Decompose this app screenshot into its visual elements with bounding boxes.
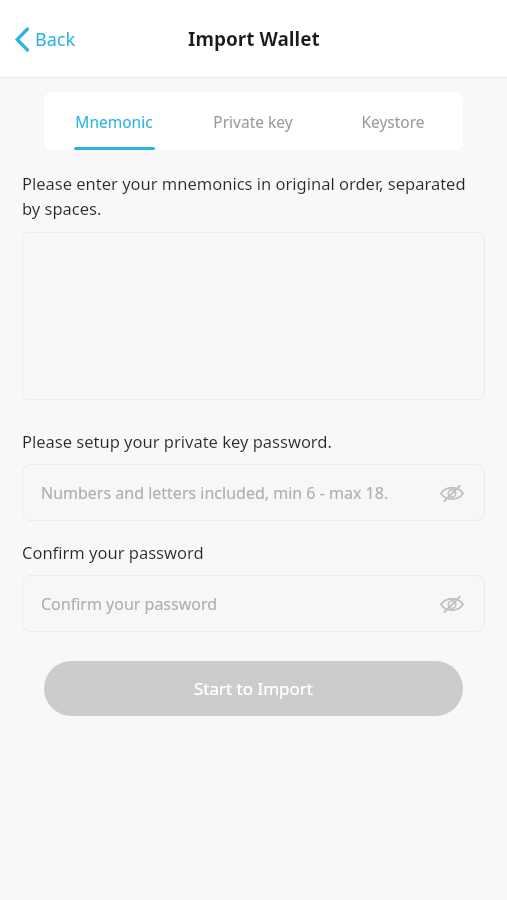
staticText: Mnemonic — [75, 111, 153, 132]
staticText: Private key — [213, 111, 293, 132]
staticText: Back — [35, 27, 76, 52]
staticText: Start to Import — [194, 677, 313, 700]
button[interactable]: Back — [10, 21, 82, 58]
button[interactable]: Toggle password visibility — [435, 476, 469, 510]
staticText: Import Wallet — [188, 26, 320, 52]
button[interactable]: Toggle password visibility — [435, 587, 469, 621]
staticText: Confirm your password — [22, 541, 204, 563]
button[interactable]: Keystore — [323, 92, 463, 150]
button[interactable]: Confirm your password — [22, 575, 485, 632]
staticText: Numbers and letters included, min 6 - ma… — [41, 482, 389, 504]
staticText: Please setup your private key password. — [22, 430, 332, 452]
button[interactable]: Private key — [183, 92, 323, 150]
staticText: Please enter your mnemonics in original … — [22, 172, 485, 220]
button[interactable]: Numbers and letters included, min 6 - ma… — [22, 464, 485, 521]
staticText: Keystore — [361, 111, 425, 132]
button[interactable]: Mnemonic — [44, 92, 183, 150]
button[interactable]: Start to Import — [44, 661, 463, 716]
staticText: Confirm your password — [41, 593, 218, 615]
